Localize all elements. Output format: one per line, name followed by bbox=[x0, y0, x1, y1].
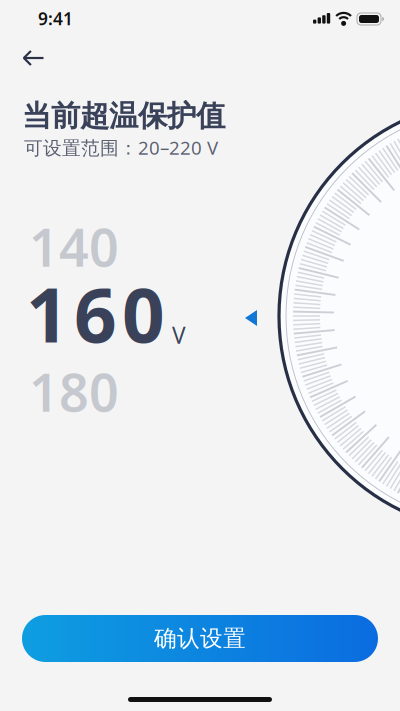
button[interactable]: 确认设置 bbox=[22, 615, 378, 662]
staticText: 确认设置 bbox=[154, 625, 246, 652]
staticText: 160 bbox=[26, 264, 165, 363]
staticText: V bbox=[172, 320, 186, 350]
staticText: 9:41 bbox=[38, 7, 73, 30]
button[interactable]: Back bbox=[14, 36, 58, 80]
staticText: 可设置范围：20–220 V bbox=[24, 135, 218, 160]
staticText: 当前超温保护值 bbox=[22, 98, 225, 134]
staticText: 140 bbox=[29, 212, 119, 281]
staticText: 180 bbox=[29, 357, 119, 426]
